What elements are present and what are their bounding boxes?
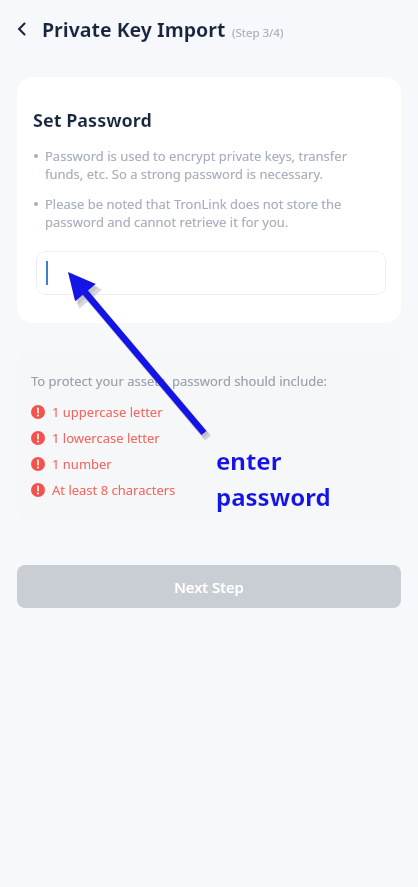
staticText: 1 number (52, 455, 112, 473)
button[interactable]: Back (4, 11, 40, 47)
staticText: To protect your assets, password should … (31, 372, 328, 390)
button[interactable]: Next Step (17, 565, 401, 608)
staticText: Set Password (33, 108, 152, 133)
staticText: Password is used to encrypt private keys… (45, 147, 383, 183)
staticText: (Step 3/4) (232, 25, 284, 41)
staticText: enter (216, 444, 282, 477)
staticText: 1 lowercase letter (52, 429, 160, 447)
staticText: Next Step (174, 577, 244, 597)
staticText: At least 8 characters (52, 481, 176, 499)
button[interactable] (36, 251, 386, 295)
staticText: password (216, 480, 331, 513)
staticText: Private Key Import (42, 16, 226, 43)
staticText: 1 uppercase letter (52, 403, 163, 421)
staticText: Please be noted that TronLink does not s… (45, 195, 383, 231)
